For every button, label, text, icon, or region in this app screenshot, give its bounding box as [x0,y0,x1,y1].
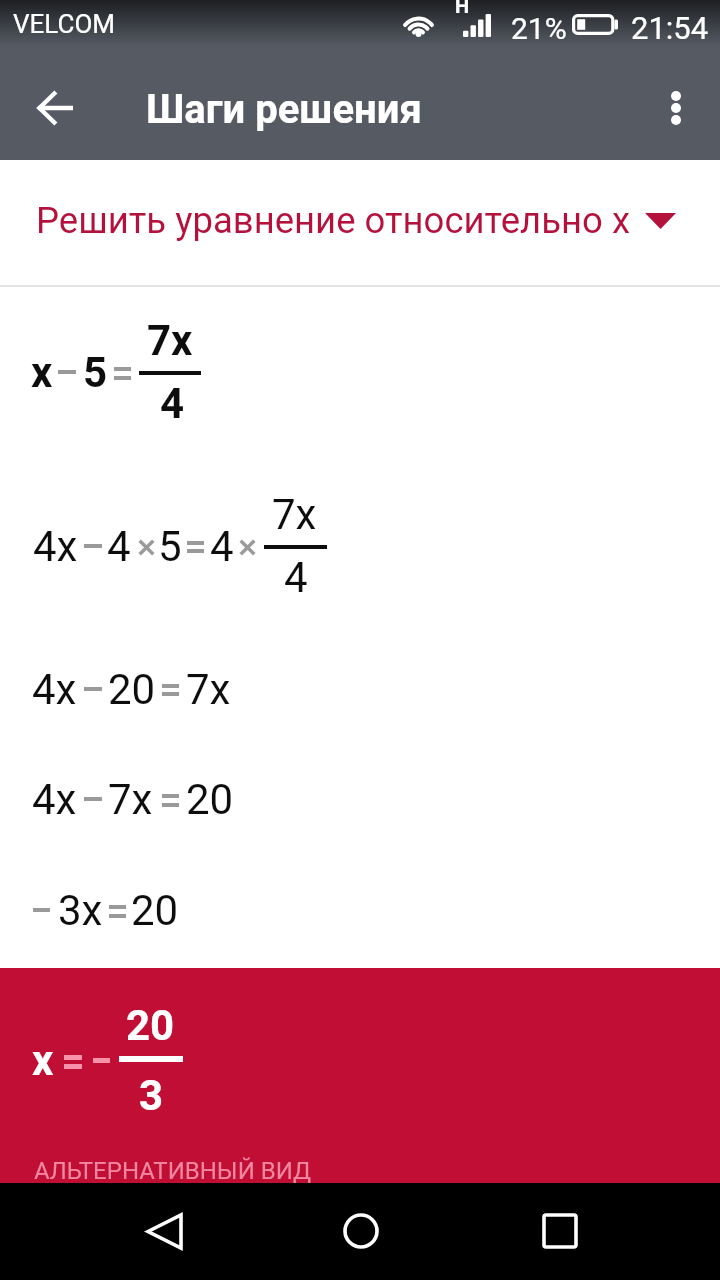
staticText: VELCOM [13,9,116,39]
staticText: 7x [272,490,317,539]
staticText: 21% [511,11,567,46]
button[interactable]: More options [644,76,708,140]
staticText: 4x [32,775,77,824]
staticText: Шаги решения [146,86,422,133]
button[interactable]: Back [116,1195,212,1267]
staticText: АЛЬТЕРНАТИВНЫЙ ВИД [34,1157,312,1185]
staticText: 21:54 [631,10,709,46]
staticText: 7x [147,316,193,365]
staticText: 4x [33,522,78,571]
staticText: 7x [186,665,231,714]
button[interactable]: Home [313,1195,409,1267]
staticText: 20 [131,886,179,935]
staticText: 4x [32,665,77,714]
staticText: 20 [186,775,234,824]
button[interactable]: x [0,968,720,1183]
staticText: x [32,1036,54,1085]
staticText: 4 [210,522,234,571]
staticText: Решить уравнение относительно x [36,199,631,242]
staticText: 7x [108,775,153,824]
staticText: 3x [58,886,103,935]
staticText: 5 [158,522,182,571]
staticText: 20 [126,1001,175,1050]
staticText: H [455,0,470,17]
button[interactable]: Решить уравнение относительно x [0,160,720,285]
staticText: x [31,348,53,397]
staticText: 4 [284,553,308,602]
button[interactable]: Recents [512,1195,608,1267]
staticText: 5 [83,348,108,397]
staticText: 20 [108,665,156,714]
staticText: 4 [107,522,131,571]
button[interactable]: Back [18,70,94,146]
staticText: 4 [160,379,185,428]
staticText: 3 [139,1071,164,1120]
